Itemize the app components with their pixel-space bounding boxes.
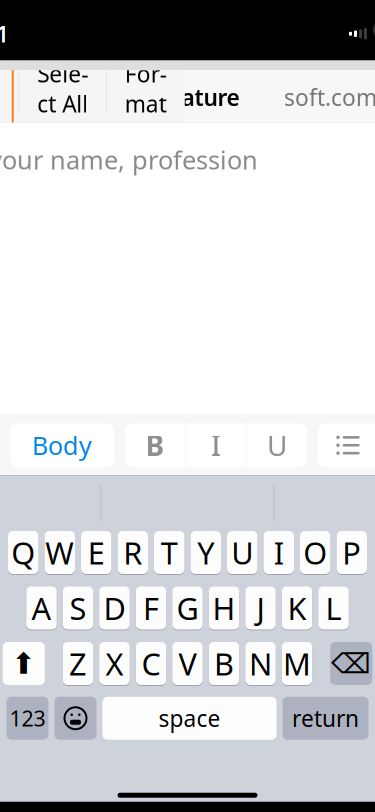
button[interactable]: Y [190,530,221,575]
staticText: J [256,588,264,628]
button[interactable]: I [186,423,246,467]
staticText: X [105,643,123,684]
staticText: G [176,588,198,628]
staticText: P [342,532,361,573]
staticText: V [178,643,196,684]
button[interactable]: P [336,530,367,575]
staticText: L [325,588,341,628]
staticText: Eg. your name, profession [0,143,258,176]
button[interactable]: space [102,697,276,740]
button[interactable]: Shift [3,642,45,685]
button[interactable]: Paste [0,47,19,131]
staticText: W [45,532,74,573]
staticText: O [303,532,327,573]
button[interactable]: R [117,530,148,575]
staticText: Signature [135,82,239,112]
button[interactable]: return [282,697,368,740]
button[interactable]: Select All [19,66,106,112]
button[interactable]: E [81,530,111,575]
staticText: S [69,588,86,628]
button[interactable]: M [282,641,312,686]
button[interactable]: U [227,530,257,575]
staticText: 12:01 [0,19,9,49]
button[interactable]: I [263,530,294,575]
staticText: U [267,427,287,464]
button[interactable]: L [318,586,349,630]
staticText: Z [69,643,87,684]
button[interactable]: Q [8,530,38,575]
button[interactable]: O [300,530,330,575]
button[interactable]: B [209,641,239,686]
button[interactable]: H [209,586,239,630]
staticText: E [88,532,105,573]
staticText: T [161,532,178,573]
staticText: Y [197,532,214,573]
staticText: I [274,532,284,573]
staticText: 123 [9,704,45,732]
button[interactable]: Bulleted list [318,423,375,467]
staticText: B [214,643,234,684]
staticText: I [211,427,221,464]
button[interactable]: K [282,586,312,630]
staticText: F [143,588,159,628]
button[interactable]: Body [10,423,114,467]
button[interactable]: Format [107,66,185,112]
staticText: H [212,588,235,628]
button[interactable]: U [247,423,307,467]
staticText: R [123,532,142,573]
button[interactable]: B [125,423,185,467]
staticText: return [292,703,359,733]
button[interactable]: C [136,641,166,686]
button[interactable]: T [154,530,184,575]
staticText: N [249,643,272,684]
staticText: ⌫ [331,648,371,679]
button[interactable]: F [136,586,166,630]
button[interactable]: Z [63,641,93,686]
staticText: Select All [37,59,88,119]
button[interactable]: N [245,641,276,686]
button[interactable]: S [63,586,93,630]
staticText: B [145,427,164,464]
staticText: space [158,703,220,733]
button[interactable]: V [172,641,203,686]
button[interactable]: W [44,530,75,575]
button[interactable]: A [26,586,57,630]
staticText: D [103,588,125,628]
staticText: U [231,532,253,573]
staticText: Q [11,532,35,573]
staticText: C [141,643,160,684]
staticText: soft.com [284,82,375,112]
button[interactable]: X [99,641,130,686]
staticText: ⬆ [11,647,36,680]
button[interactable]: Delete [330,642,372,685]
button[interactable]: D [99,586,130,630]
button[interactable]: Emoji [54,697,96,740]
button[interactable]: J [245,586,276,630]
staticText: Format [125,59,167,119]
staticText: A [31,588,51,628]
button[interactable]: 123 [6,697,48,740]
staticText: Body [32,428,92,462]
button[interactable]: G [172,586,203,630]
staticText: K [287,588,306,628]
staticText: M [283,643,311,684]
